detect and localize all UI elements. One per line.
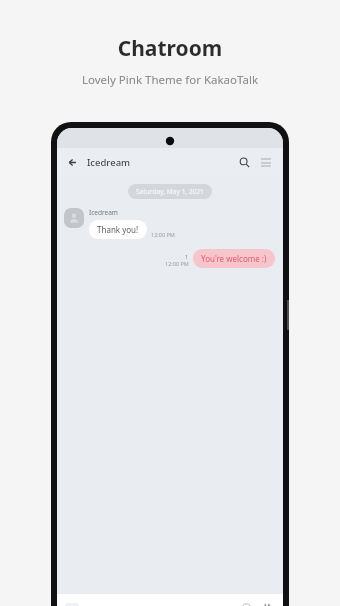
staticText: 12:00 PM xyxy=(165,260,189,267)
staticText: Saturday, May 1, 2021 xyxy=(136,187,204,196)
staticText: 1 xyxy=(185,253,189,260)
button[interactable]: Thank you! xyxy=(89,220,147,239)
button[interactable]: Profile xyxy=(64,208,84,228)
staticText: Chatroom xyxy=(0,34,340,63)
button[interactable]: You're welcome :) xyxy=(193,249,275,268)
button[interactable]: Back xyxy=(63,152,83,172)
button[interactable]: Add attachment xyxy=(63,599,81,606)
staticText: You're welcome :) xyxy=(201,253,267,264)
button[interactable]: Menu xyxy=(256,152,276,172)
button[interactable]: Shortcuts xyxy=(258,599,276,606)
staticText: Thank you! xyxy=(97,224,139,235)
button[interactable]: Emoticons xyxy=(237,599,255,606)
staticText: Lovely Pink Theme for KakaoTalk xyxy=(0,72,340,88)
button[interactable]: Search xyxy=(234,152,254,172)
staticText: 12:00 PM xyxy=(151,231,175,238)
staticText: Icedream xyxy=(87,156,131,169)
staticText: Icedream xyxy=(89,208,118,217)
